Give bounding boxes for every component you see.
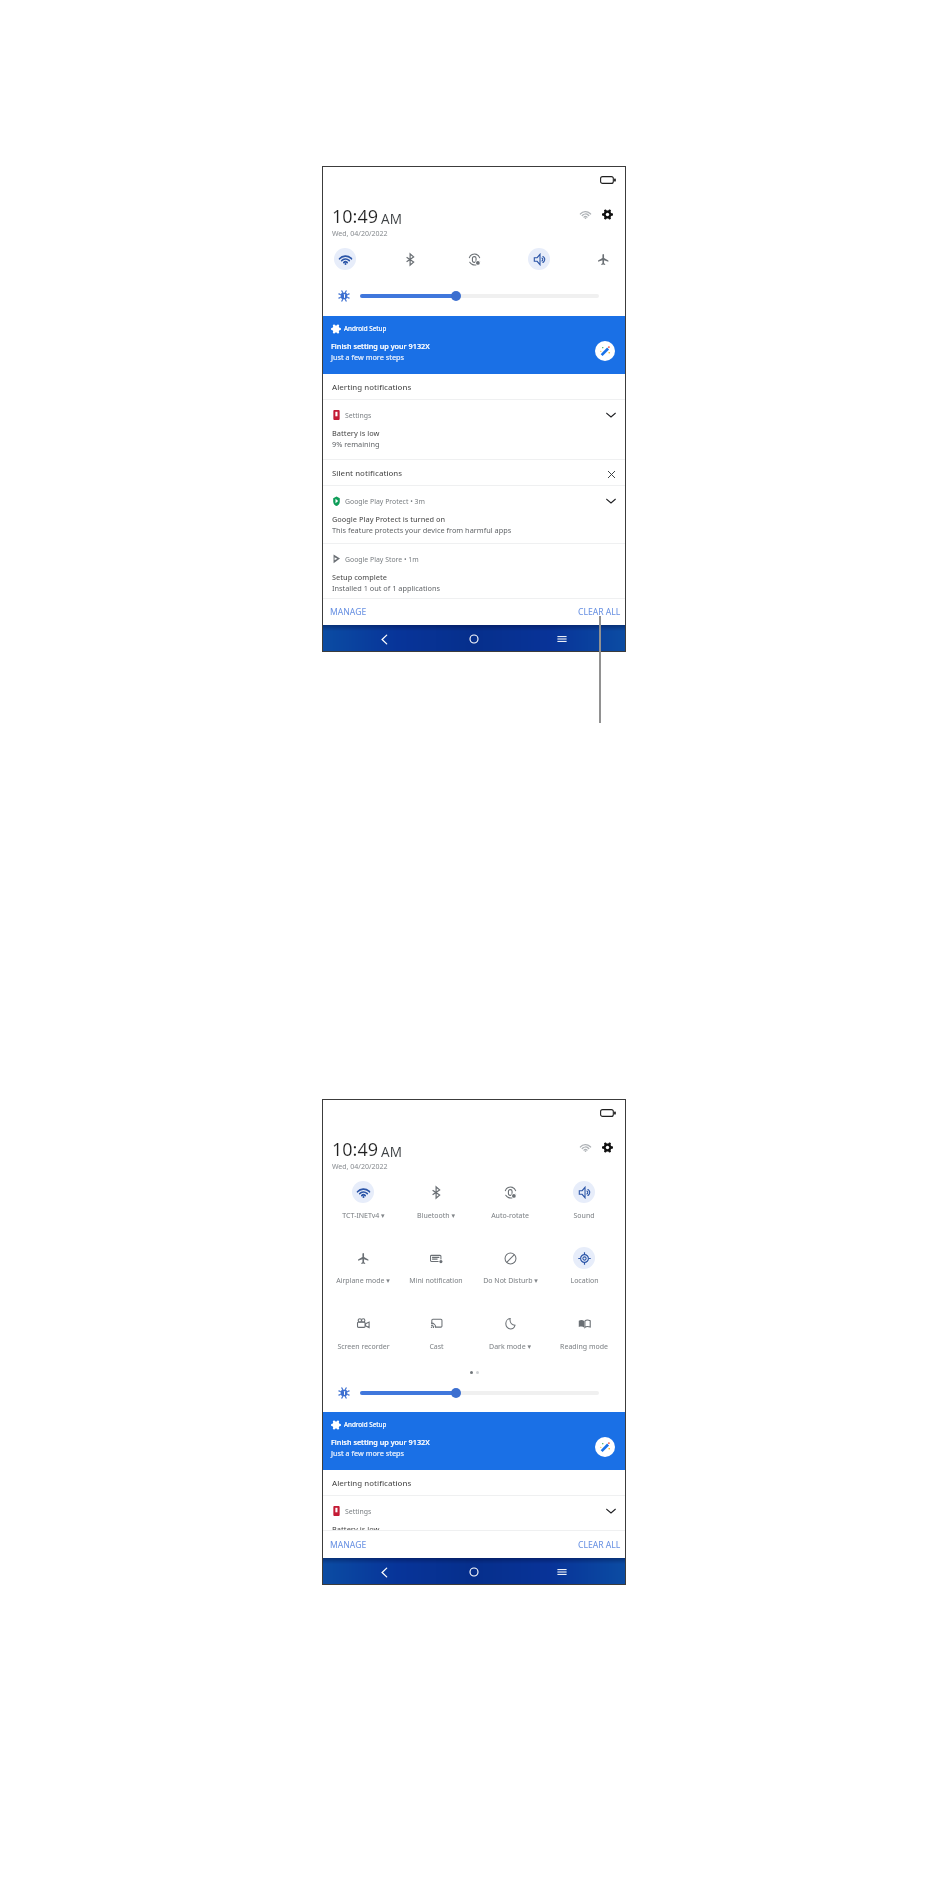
staticText: Alerting notifications xyxy=(332,1478,412,1489)
staticText: Installed 1 out of 1 applications xyxy=(332,583,440,593)
staticText: Finish setting up your 9132X xyxy=(331,341,430,351)
staticText: Screen recorder xyxy=(337,1342,390,1352)
staticText: Silent notifications xyxy=(332,468,403,479)
staticText: This feature protects your device from h… xyxy=(332,525,512,535)
button[interactable]: Continue setup xyxy=(595,1437,615,1457)
button[interactable]: Back xyxy=(372,627,396,651)
staticText: Bluetooth ▾ xyxy=(417,1211,455,1221)
other: Brightness xyxy=(338,1387,350,1399)
button[interactable]: Sound xyxy=(528,248,550,270)
button[interactable]: Expand notification xyxy=(603,407,619,423)
button[interactable]: Dismiss silent notifications xyxy=(604,467,618,481)
button[interactable]: Cast xyxy=(425,1312,447,1334)
button[interactable]: Sound xyxy=(573,1181,595,1203)
staticText: CLEAR ALL xyxy=(578,606,621,618)
button[interactable]: Continue setup xyxy=(595,341,615,361)
button[interactable]: Google Play Protect • 3m xyxy=(322,486,626,544)
button[interactable]: Expand notification xyxy=(603,493,619,509)
staticText: 9% remaining xyxy=(332,439,380,449)
button[interactable]: Airplane mode xyxy=(592,248,614,270)
staticText: Google Play Protect • 3m xyxy=(345,497,425,506)
staticText: Wed, 04/20/2022 xyxy=(332,229,388,239)
button[interactable]: Airplane mode xyxy=(352,1247,374,1269)
button[interactable]: Google Play Store • 1m xyxy=(322,544,626,599)
button[interactable]: Settings xyxy=(599,1139,615,1155)
button[interactable]: Wi-Fi xyxy=(334,248,356,270)
staticText: CLEAR ALL xyxy=(578,1539,621,1551)
button[interactable]: Wi-Fi xyxy=(352,1181,374,1203)
button[interactable]: Settings xyxy=(322,1496,626,1531)
staticText: Battery is low xyxy=(332,1524,380,1531)
button[interactable]: Expand notification xyxy=(603,1503,619,1519)
staticText: Setup complete xyxy=(332,572,387,582)
button[interactable]: Bluetooth xyxy=(399,248,421,270)
button[interactable]: Reading mode xyxy=(573,1312,595,1334)
staticText: Wed, 04/20/2022 xyxy=(332,1162,388,1172)
staticText: TCT-INETv4 ▾ xyxy=(342,1211,385,1221)
staticText: Do Not Disturb ▾ xyxy=(483,1276,538,1286)
button[interactable]: CLEAR ALL xyxy=(575,1536,624,1554)
other: Wi-Fi xyxy=(580,1142,591,1153)
button[interactable]: Back xyxy=(372,1560,396,1584)
staticText: Alerting notifications xyxy=(332,382,412,393)
button[interactable]: Bluetooth xyxy=(425,1181,447,1203)
staticText: Android Setup xyxy=(344,1420,387,1429)
button[interactable]: MANAGE xyxy=(327,1536,370,1554)
staticText: Google Play Store • 1m xyxy=(345,555,419,564)
staticText: Just a few more steps xyxy=(331,352,404,362)
button[interactable]: Auto-rotate xyxy=(463,248,485,270)
staticText: MANAGE xyxy=(330,1539,367,1551)
staticText: Cast xyxy=(429,1342,444,1352)
staticText: Auto-rotate xyxy=(491,1211,529,1221)
button[interactable]: Recent apps xyxy=(550,627,574,651)
button[interactable]: Settings xyxy=(599,206,615,222)
button[interactable]: Home xyxy=(462,1560,486,1584)
staticText: Settings xyxy=(345,1507,372,1516)
other: Wi-Fi xyxy=(580,209,591,220)
staticText: Google Play Protect is turned on xyxy=(332,514,446,524)
staticText: Finish setting up your 9132X xyxy=(331,1437,430,1447)
staticText: Dark mode ▾ xyxy=(489,1342,531,1352)
button[interactable]: Mini notification xyxy=(425,1247,447,1269)
staticText: Location xyxy=(570,1276,599,1286)
button[interactable]: Screen recorder xyxy=(352,1312,374,1334)
staticText: AM xyxy=(381,210,402,228)
button[interactable]: MANAGE xyxy=(327,603,370,621)
button[interactable]: Settings xyxy=(322,400,626,460)
other: Brightness xyxy=(338,290,350,302)
staticText: Just a few more steps xyxy=(331,1448,404,1458)
button[interactable]: Do Not Disturb xyxy=(499,1247,521,1269)
button[interactable]: Home xyxy=(462,627,486,651)
button[interactable]: Dark mode xyxy=(499,1312,521,1334)
button[interactable]: Location xyxy=(573,1247,595,1269)
staticText: 10:49 xyxy=(332,204,379,229)
staticText: Reading mode xyxy=(560,1342,608,1352)
button[interactable]: Recent apps xyxy=(550,1560,574,1584)
staticText: Android Setup xyxy=(344,324,387,333)
staticText: Airplane mode ▾ xyxy=(336,1276,390,1286)
staticText: AM xyxy=(381,1143,402,1161)
button[interactable]: CLEAR ALL xyxy=(575,603,624,621)
staticText: Mini notification xyxy=(409,1276,463,1286)
staticText: MANAGE xyxy=(330,606,367,618)
staticText: Sound xyxy=(573,1211,595,1221)
staticText: 10:49 xyxy=(332,1137,379,1162)
button[interactable]: Auto-rotate xyxy=(499,1181,521,1203)
staticText: Battery is low xyxy=(332,428,380,438)
staticText: Settings xyxy=(345,411,372,420)
